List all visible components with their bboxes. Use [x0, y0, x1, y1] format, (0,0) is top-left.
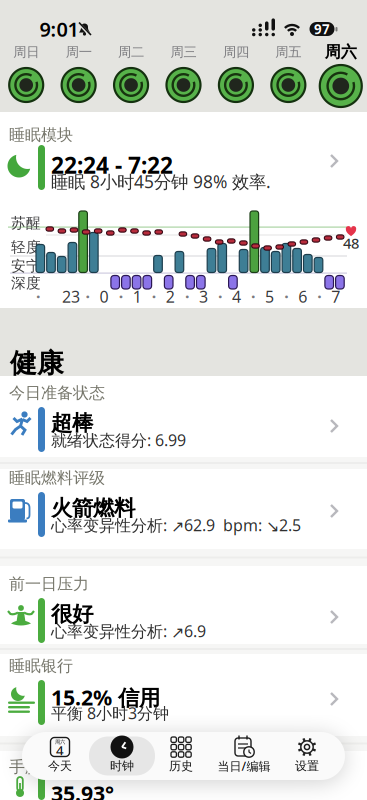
staticText: 48 — [343, 233, 359, 253]
staticText: 7 — [331, 286, 340, 307]
staticText: 周一 — [66, 44, 92, 60]
staticText: 今日准备状态 — [9, 383, 105, 403]
staticText: 周六 — [55, 739, 65, 745]
staticText: 睡眠 8小时45分钟 98% 效率. — [51, 170, 271, 193]
staticText: 轻度 — [11, 238, 41, 256]
staticText: · — [119, 285, 123, 307]
staticText: · — [284, 285, 288, 307]
staticText: 睡眠银行 — [9, 656, 73, 676]
staticText: 23 — [62, 286, 80, 307]
staticText: 周三 — [170, 44, 196, 60]
staticText: 当日/编辑 — [217, 758, 270, 774]
staticText: 前一日压力 — [9, 574, 89, 594]
staticText: 超棒 — [51, 410, 93, 436]
staticText: 就绪状态得分: 6.99 — [51, 429, 186, 451]
staticText: 很好 — [51, 601, 93, 627]
staticText: 健康 — [10, 347, 64, 380]
staticText: 火箭燃料 — [51, 495, 135, 521]
staticText: · — [86, 285, 90, 307]
staticText: 4 — [56, 741, 64, 759]
staticText: 安宁 — [11, 257, 41, 275]
staticText: 心率变异性分析: ↗62.9 bpm: ↘2.5 — [51, 514, 301, 536]
staticText: 睡眠燃料评级 — [9, 468, 105, 488]
staticText: 设置 — [295, 759, 319, 773]
staticText: 周日 — [13, 44, 39, 60]
staticText: 心率变异性分析: ↗6.9 — [51, 620, 206, 642]
staticText: · — [218, 285, 222, 307]
staticText: 97 — [314, 20, 330, 38]
staticText: 苏醒 — [11, 214, 41, 232]
staticText: 3 — [199, 286, 208, 307]
staticText: 今天 — [48, 759, 72, 773]
staticText: 1 — [133, 286, 142, 307]
staticText: 睡眠模块 — [9, 125, 73, 145]
staticText: 周五 — [275, 44, 301, 60]
staticText: 深度 — [11, 274, 41, 292]
staticText: 0 — [100, 286, 109, 307]
staticText: 周四 — [223, 44, 249, 60]
staticText: 历史 — [169, 759, 193, 773]
staticText: 5 — [265, 286, 274, 307]
staticText: 平衡 8小时3分钟 — [51, 702, 169, 724]
staticText: · — [36, 285, 40, 307]
staticText: 时钟 — [110, 759, 134, 773]
staticText: 6 — [298, 286, 307, 307]
staticText: 15.2% 信用 — [51, 683, 160, 711]
staticText: · — [152, 285, 156, 307]
staticText: 22:24 - 7:22 — [51, 150, 173, 180]
staticText: 35.93° — [51, 779, 114, 800]
staticText: 2 — [166, 286, 175, 307]
staticText: 9:01 — [39, 16, 78, 42]
staticText: · — [317, 285, 321, 307]
staticText: 周二 — [118, 44, 144, 60]
staticText: 4 — [232, 286, 241, 307]
staticText: 周六 — [325, 42, 357, 62]
staticText: · — [251, 285, 255, 307]
staticText: 手腕温度 — [9, 757, 73, 777]
staticText: · — [185, 285, 189, 307]
